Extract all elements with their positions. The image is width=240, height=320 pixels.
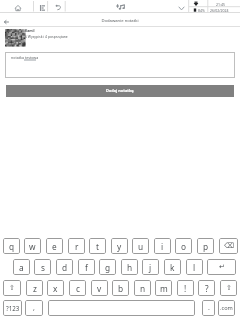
button[interactable]: i: [154, 238, 171, 254]
button[interactable]: Format: [40, 5, 45, 11]
button[interactable]: w: [24, 238, 41, 254]
staticText: r: [75, 241, 79, 252]
staticText: u: [138, 241, 144, 252]
staticText: n: [140, 283, 146, 294]
button[interactable]: x: [47, 280, 64, 296]
staticText: s: [41, 262, 45, 273]
staticText: i: [161, 241, 164, 252]
staticText: notatka testowa: [11, 55, 39, 60]
button[interactable]: l: [186, 259, 203, 275]
staticText: q: [9, 241, 15, 252]
button[interactable]: r: [68, 238, 85, 254]
staticText: b: [118, 283, 124, 294]
staticText: 26/02/2024: [210, 8, 229, 13]
button[interactable]: n: [134, 280, 151, 296]
staticText: j: [149, 262, 152, 273]
button[interactable]: u: [132, 238, 149, 254]
staticText: v: [97, 283, 102, 294]
button[interactable]: m: [155, 280, 172, 296]
staticText: .com: [220, 304, 233, 312]
button[interactable]: .: [202, 300, 215, 316]
button[interactable]: b: [112, 280, 129, 296]
button[interactable]: q: [3, 238, 20, 254]
staticText: 6 Wysypisk i 4 posprzątane: [25, 34, 68, 39]
staticText: 21:45: [216, 2, 225, 7]
staticText: ⇧: [9, 284, 15, 292]
staticText: c: [76, 283, 80, 294]
staticText: ?: [205, 283, 209, 294]
button[interactable]: o: [175, 238, 192, 254]
staticText: ,: [33, 303, 35, 313]
staticText: z: [33, 283, 37, 294]
staticText: h: [127, 262, 133, 273]
button[interactable]: d: [56, 259, 73, 275]
button[interactable]: f: [78, 259, 95, 275]
staticText: o: [181, 241, 187, 252]
button[interactable]: c: [69, 280, 86, 296]
staticText: x: [53, 283, 58, 294]
button[interactable]: Add note: [116, 4, 125, 10]
button[interactable]: ,: [25, 300, 43, 316]
staticText: f: [85, 262, 88, 273]
staticText: k: [170, 262, 175, 273]
button[interactable]: notatka testowa: [5, 52, 235, 78]
button[interactable]: ?123: [3, 300, 22, 316]
staticText: a: [19, 262, 24, 273]
staticText: l: [193, 262, 196, 273]
button[interactable]: Dodaj notatkę: [6, 85, 234, 97]
staticText: w: [29, 241, 36, 252]
button[interactable]: ⇧: [3, 280, 21, 296]
button[interactable]: Undo: [56, 5, 61, 10]
button[interactable]: a: [13, 259, 30, 275]
button[interactable]: Home: [15, 5, 21, 11]
staticText: ↵: [219, 263, 225, 271]
button[interactable]: g: [99, 259, 116, 275]
staticText: g: [105, 262, 111, 273]
button[interactable]: !: [177, 280, 194, 296]
button[interactable]: k: [164, 259, 181, 275]
staticText: e: [52, 241, 57, 252]
button[interactable]: Navigate up: [4, 20, 9, 24]
button[interactable]: y: [111, 238, 128, 254]
staticText: d: [62, 262, 68, 273]
button[interactable]: [48, 300, 195, 316]
button[interactable]: ↵: [207, 259, 236, 275]
button[interactable]: h: [121, 259, 138, 275]
button[interactable]: ?: [198, 280, 215, 296]
button[interactable]: ⌫: [219, 238, 238, 254]
staticText: y: [117, 241, 122, 252]
button[interactable]: z: [26, 280, 43, 296]
staticText: 84%: [198, 8, 205, 13]
staticText: p: [203, 241, 209, 252]
staticText: ?123: [6, 304, 20, 312]
button[interactable]: .com: [218, 300, 235, 316]
button[interactable]: p: [197, 238, 214, 254]
button[interactable]: ⇧: [220, 280, 237, 296]
button[interactable]: j: [142, 259, 159, 275]
button[interactable]: s: [34, 259, 51, 275]
staticText: ⌫: [224, 242, 234, 250]
button[interactable]: e: [46, 238, 63, 254]
staticText: Kamil: [25, 28, 35, 33]
staticText: !: [184, 283, 187, 294]
staticText: ⇧: [226, 284, 232, 292]
staticText: Dodaj notatkę: [106, 88, 134, 93]
other: Expand: [178, 5, 185, 12]
staticText: .: [208, 303, 210, 313]
button[interactable]: v: [91, 280, 108, 296]
staticText: m: [160, 283, 168, 294]
button[interactable]: t: [89, 238, 106, 254]
staticText: t: [96, 241, 99, 252]
staticText: Dodawanie notatki: [0, 18, 240, 24]
